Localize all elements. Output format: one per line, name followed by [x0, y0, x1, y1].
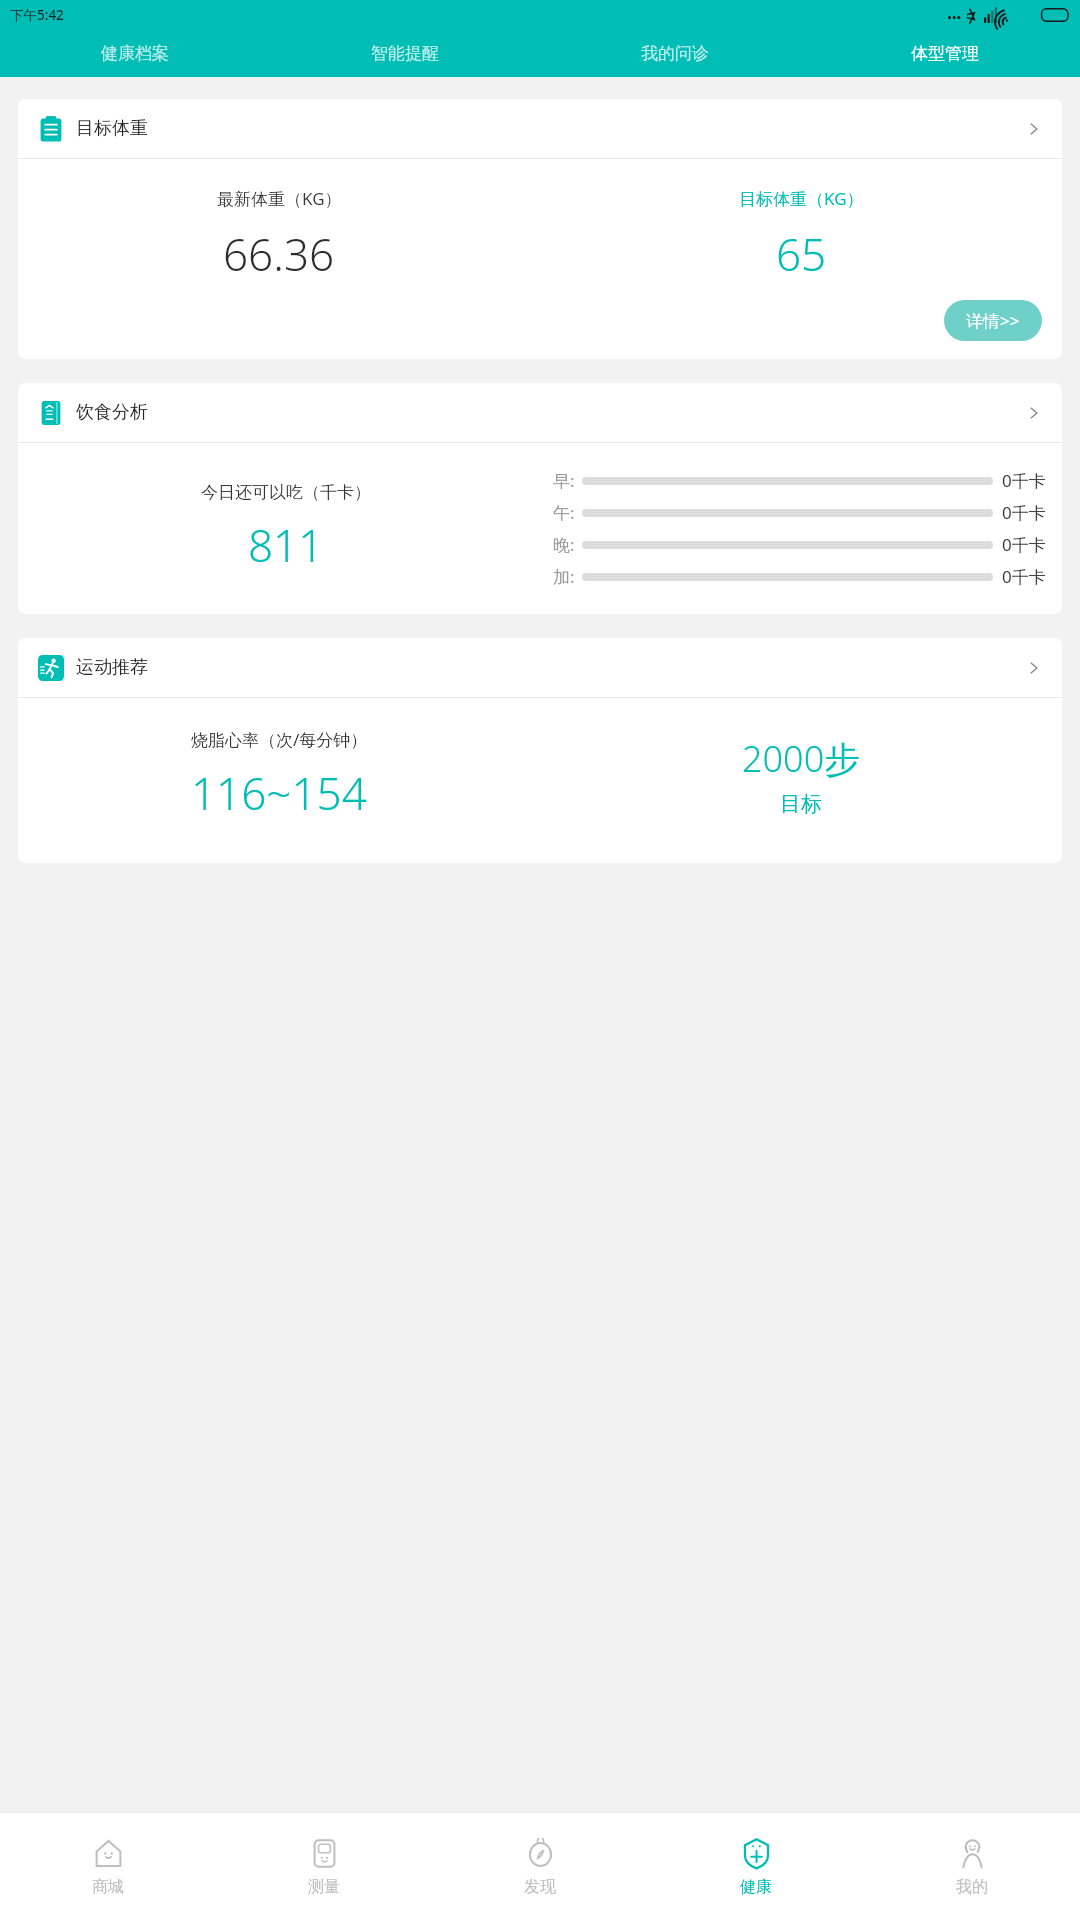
staticText: 目标体重 — [76, 117, 148, 140]
staticText: 0千卡 — [1002, 501, 1046, 524]
staticText: 运动推荐 — [76, 656, 148, 679]
button[interactable]: 商城 — [0, 1837, 216, 1897]
button[interactable]: 运动推荐 — [18, 638, 1062, 697]
staticText: 我的问诊 — [641, 43, 709, 64]
button[interactable]: 体型管理 — [810, 43, 1080, 64]
staticText: 116~154 — [191, 763, 367, 823]
staticText: 健康档案 — [101, 43, 169, 64]
button[interactable]: 目标体重 — [18, 99, 1062, 158]
staticText: 我的 — [956, 1877, 988, 1897]
button[interactable]: 智能提醒 — [270, 43, 540, 64]
staticText: 今日还可以吃（千卡） — [201, 482, 371, 503]
staticText: 商城 — [92, 1877, 124, 1897]
staticText: 午: — [553, 501, 575, 524]
button[interactable]: 详情>> — [944, 300, 1042, 341]
staticText: 66.36 — [223, 224, 335, 284]
other: More — [1026, 660, 1042, 676]
staticText: 加: — [553, 565, 575, 588]
staticText: 0千卡 — [1002, 469, 1046, 492]
button[interactable]: 饮食分析 — [18, 383, 1062, 442]
staticText: 811 — [248, 515, 324, 575]
button[interactable]: 健康档案 — [0, 43, 270, 64]
button[interactable]: 发现 — [432, 1837, 648, 1897]
staticText: 烧脂心率（次/每分钟） — [191, 728, 368, 751]
staticText: 测量 — [308, 1877, 340, 1897]
other: More — [1026, 405, 1042, 421]
staticText: 0千卡 — [1002, 533, 1046, 556]
staticText: 健康 — [740, 1877, 772, 1897]
staticText: 下午5:42 — [10, 6, 64, 24]
staticText: 详情>> — [966, 309, 1020, 332]
staticText: 早: — [553, 469, 575, 492]
other: More — [1026, 121, 1042, 137]
button[interactable]: 我的 — [864, 1837, 1080, 1897]
button[interactable]: 健康 — [648, 1837, 864, 1897]
staticText: 晚: — [553, 533, 575, 556]
staticText: 0千卡 — [1002, 565, 1046, 588]
staticText: 智能提醒 — [371, 43, 439, 64]
staticText: 饮食分析 — [76, 401, 148, 424]
staticText: 2000步 — [742, 734, 861, 783]
staticText: 目标体重（KG） — [739, 187, 864, 210]
staticText: 65 — [776, 224, 827, 284]
button[interactable]: 测量 — [216, 1837, 432, 1897]
staticText: 目标 — [780, 791, 822, 817]
staticText: 体型管理 — [911, 43, 979, 64]
staticText: 发现 — [524, 1877, 556, 1897]
staticText: 最新体重（KG） — [217, 187, 342, 210]
button[interactable]: 我的问诊 — [540, 43, 810, 64]
